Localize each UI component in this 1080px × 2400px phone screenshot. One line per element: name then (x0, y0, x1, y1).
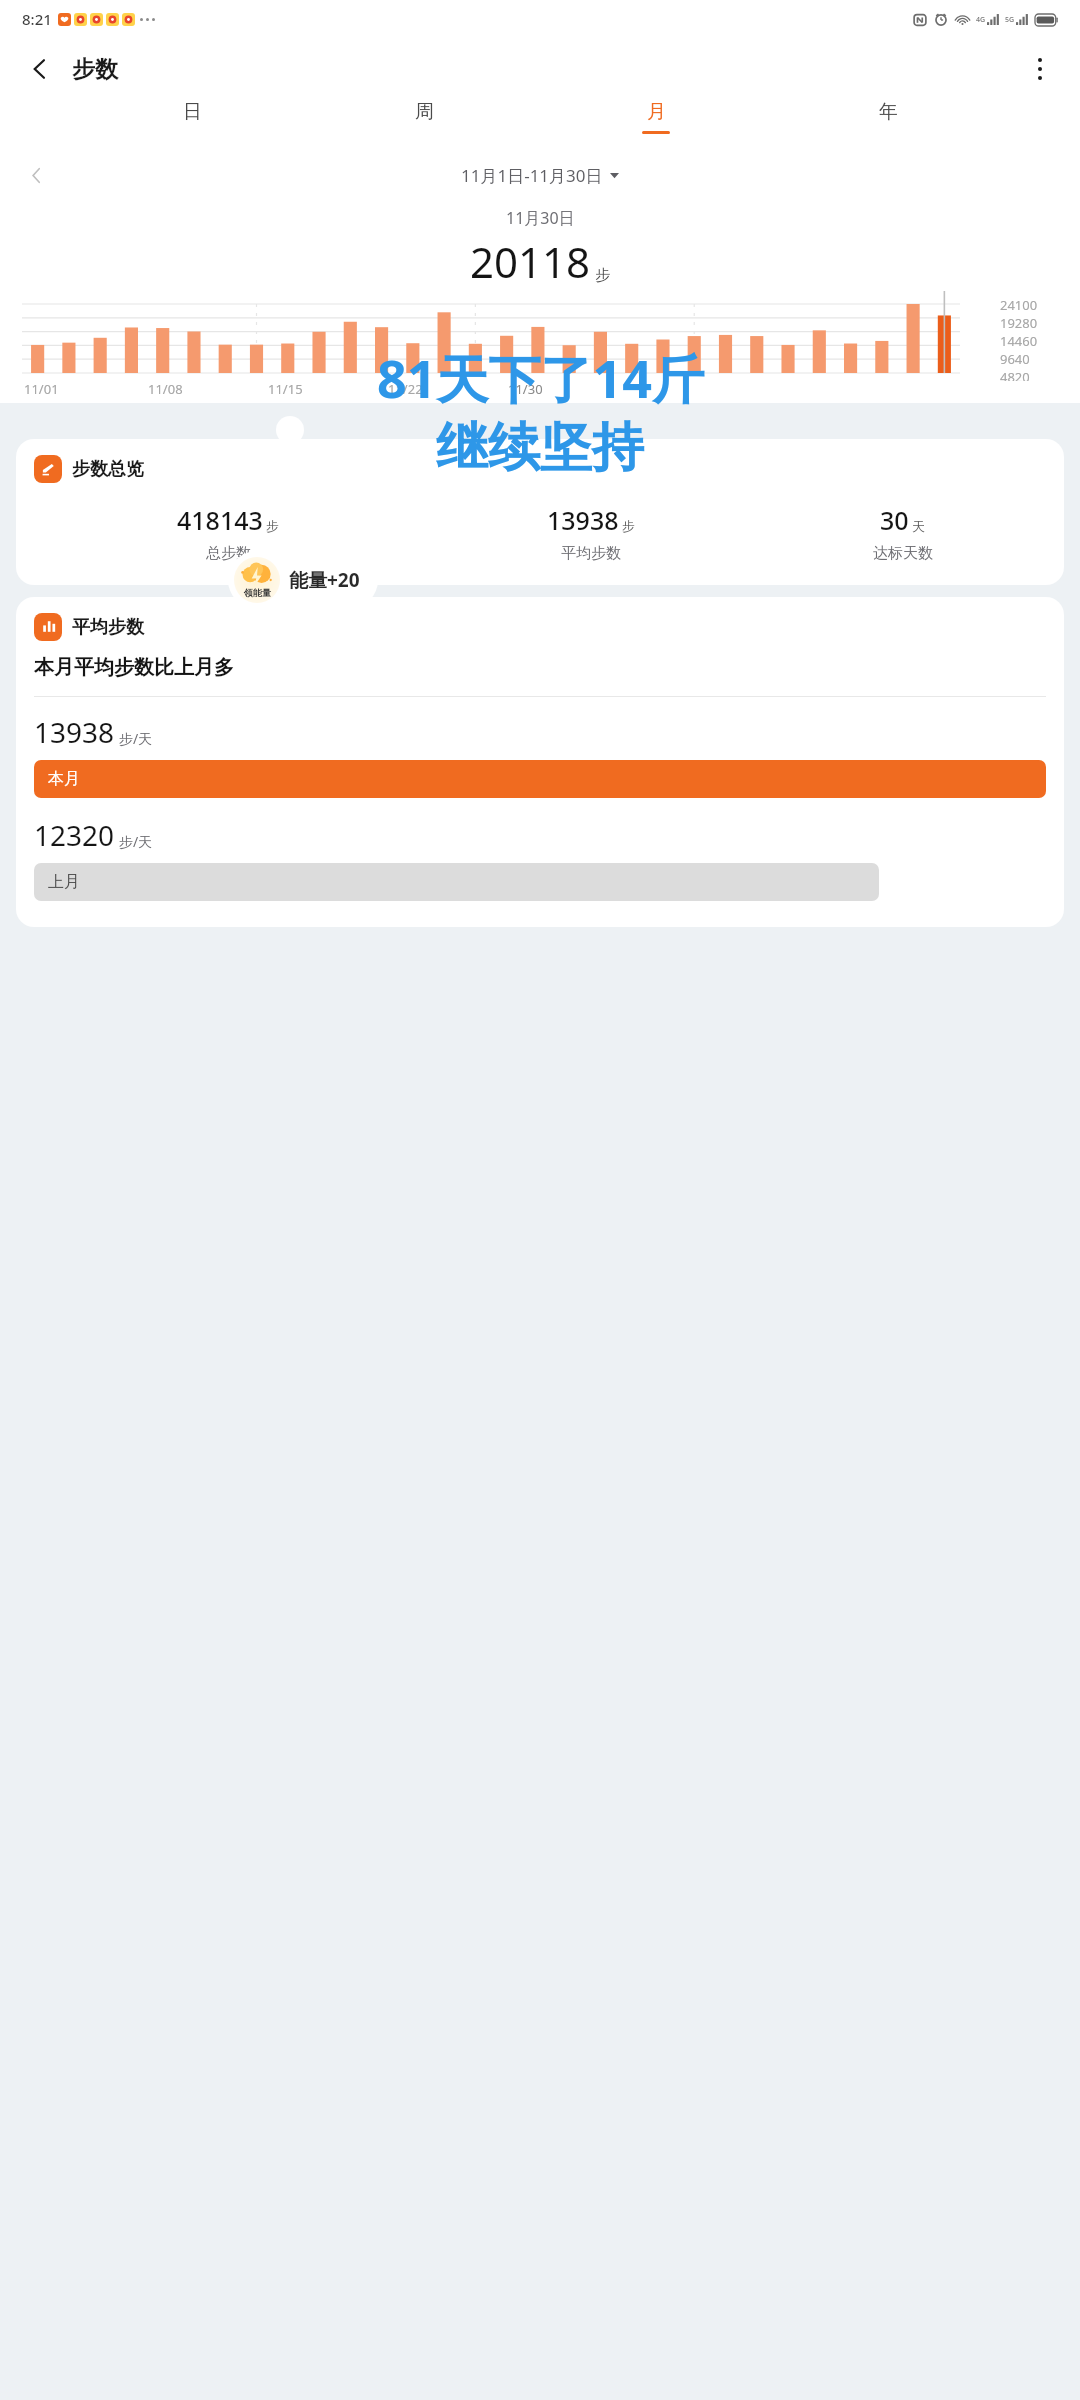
staticText: 14460 (1000, 332, 1038, 350)
staticText: 8:21 (22, 9, 52, 29)
staticText: 上月 (48, 872, 80, 892)
staticText: 11/08 (148, 380, 183, 398)
staticText: 领能量 (244, 587, 271, 598)
staticText: 步 (595, 266, 610, 285)
staticText: 12320 (34, 816, 115, 854)
staticText: 11月30日 (506, 207, 575, 229)
staticText: 11/15 (268, 380, 303, 398)
button[interactable]: 11月1日-11月30日 (461, 164, 619, 187)
staticText: 24100 (1000, 296, 1038, 314)
button[interactable]: Expand (276, 416, 304, 444)
button[interactable]: 平均步数 (16, 597, 1064, 927)
staticText: 13938 (547, 503, 619, 537)
staticText: 20118 (470, 233, 591, 290)
staticText: 步/天 (119, 832, 153, 851)
staticText: 达标天数 (873, 544, 933, 563)
staticText: 步/天 (119, 729, 153, 748)
staticText: 平均步数 (561, 544, 621, 563)
staticText: 平均步数 (72, 616, 144, 639)
button[interactable]: 步数总览 (16, 439, 1064, 585)
staticText: 4G (976, 15, 986, 25)
button[interactable]: 月 (540, 100, 772, 152)
staticText: 19280 (1000, 314, 1038, 332)
staticText: 11/01 (24, 380, 59, 398)
button[interactable]: Previous period (14, 153, 58, 197)
staticText: 步数 (72, 55, 118, 84)
staticText: 总步数 (206, 544, 251, 563)
staticText: 能量+20 (289, 567, 360, 593)
staticText: 30 (880, 503, 909, 537)
staticText: 13938 (34, 713, 115, 751)
button[interactable]: More options (1014, 43, 1066, 95)
button[interactable]: 领能量 (228, 551, 378, 609)
staticText: 本月 (48, 769, 80, 789)
staticText: 5G (1005, 15, 1015, 25)
staticText: 4820 (1000, 368, 1030, 381)
staticText: 本月平均步数比上月多 (34, 655, 234, 680)
button[interactable]: 上月 (34, 863, 879, 901)
staticText: 继续坚持 (436, 415, 644, 481)
staticText: 9640 (1000, 350, 1030, 368)
staticText: 年 (879, 100, 898, 124)
staticText: 月 (647, 100, 666, 124)
staticText: 日 (183, 100, 202, 124)
button[interactable]: 周 (308, 100, 540, 152)
staticText: 11/22 (388, 380, 423, 398)
staticText: 81天下了14斤 (377, 342, 704, 413)
staticText: 步 (622, 518, 635, 534)
staticText: 天 (912, 518, 925, 534)
staticText: 周 (415, 100, 434, 124)
button[interactable]: 日 (76, 100, 308, 152)
staticText: 步数总览 (72, 458, 144, 481)
button[interactable]: 本月 (34, 760, 1046, 798)
staticText: 11月1日-11月30日 (461, 164, 603, 187)
staticText: 418143 (177, 503, 263, 537)
staticText: 11/30 (508, 380, 543, 398)
button[interactable]: Back (14, 43, 66, 95)
staticText: 步 (266, 518, 279, 534)
button[interactable]: 年 (772, 100, 1004, 152)
